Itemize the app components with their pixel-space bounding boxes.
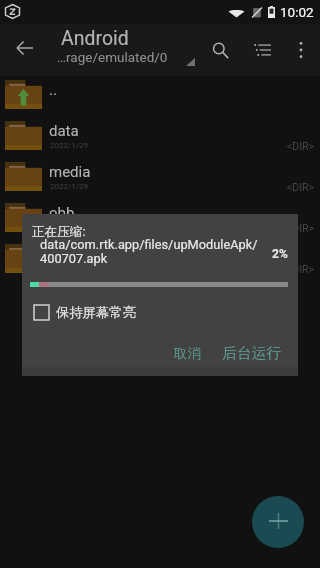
staticText: 保持屏幕常亮 — [56, 304, 136, 321]
button[interactable]: Add — [252, 496, 304, 548]
button[interactable]: Sort — [240, 24, 284, 76]
button[interactable]: .. — [0, 76, 320, 117]
button[interactable]: cn.wps.moffice_eng — [0, 240, 320, 281]
button[interactable]: data — [0, 117, 320, 158]
staticText: <DIR> — [287, 181, 315, 193]
button[interactable]: 保持屏幕常亮 — [34, 304, 136, 321]
button[interactable]: media — [0, 158, 320, 199]
staticText: 取消 — [174, 345, 201, 362]
button[interactable]: 后台运行 — [211, 338, 298, 369]
button[interactable]: obb — [0, 199, 320, 240]
button[interactable]: Back — [3, 26, 46, 69]
staticText: data/com.rtk.app/files/upModuleApk/ 4007… — [40, 237, 258, 266]
staticText: 后台运行 — [222, 344, 282, 363]
staticText: <DIR> — [287, 263, 315, 275]
staticText: data — [49, 122, 79, 140]
staticText: <DIR> — [287, 140, 315, 152]
staticText: 2022/1/29 — [50, 141, 89, 150]
other: Notification — [5, 4, 20, 19]
button[interactable]: More options — [282, 24, 320, 76]
staticText: obb — [49, 204, 75, 222]
staticText: cn.wps.moffice_eng — [49, 245, 183, 263]
staticText: 10:02 — [280, 4, 314, 20]
staticText: 正在压缩: — [32, 224, 86, 240]
staticText: <DIR> — [287, 222, 315, 234]
staticText: 2% — [272, 247, 288, 261]
staticText: 2022/1/29 — [50, 223, 89, 232]
staticText: …rage/emulated/0 — [57, 49, 168, 65]
button[interactable]: Search — [198, 24, 242, 76]
staticText: media — [49, 163, 91, 181]
button[interactable]: 取消 — [164, 339, 211, 368]
staticText: .. — [49, 81, 57, 99]
staticText: 2022/1/29 — [50, 182, 89, 191]
staticText: Android — [61, 27, 129, 50]
